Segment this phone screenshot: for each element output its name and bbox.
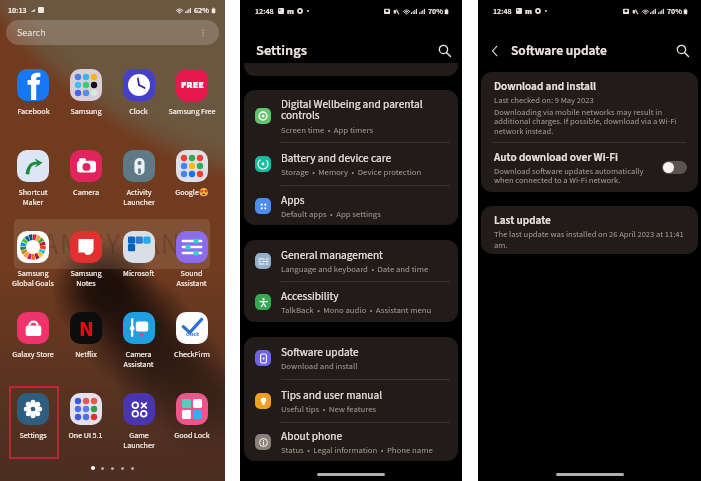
staticText: About phone	[281, 428, 343, 444]
staticText: The last update was installed on 26 Apri…	[494, 228, 687, 251]
button[interactable]: Back	[487, 43, 503, 59]
button[interactable]: Sound Assistant	[165, 223, 218, 304]
staticText: Facebook	[17, 106, 50, 117]
button[interactable]: General management	[244, 240, 458, 281]
staticText: General management	[281, 247, 383, 263]
button[interactable]: Facebook	[7, 61, 59, 142]
staticText: Samsung	[70, 106, 102, 117]
staticText: Shortcut Maker	[18, 187, 48, 208]
staticText: Software update	[511, 41, 607, 60]
staticText: Netflix	[75, 349, 97, 360]
button[interactable]: Search	[434, 40, 454, 60]
button[interactable]: Tips and user manual	[244, 380, 458, 422]
button[interactable]: Settings	[7, 385, 59, 466]
staticText: Auto download over Wi-Fi	[494, 149, 618, 165]
staticText: Default apps • App settings	[281, 208, 381, 220]
staticText: Settings	[256, 40, 307, 61]
staticText: Download and install	[494, 78, 597, 94]
staticText: 12:48	[255, 6, 274, 17]
staticText: Download software updates automatically …	[494, 165, 656, 186]
button[interactable]: One UI 5.1	[59, 385, 112, 466]
button[interactable]: Samsung Notes	[59, 223, 112, 304]
button[interactable]: Apps	[244, 186, 458, 225]
staticText: Settings	[19, 430, 47, 441]
staticText: Downloading via mobile networks may resu…	[494, 106, 687, 137]
staticText: CheckFirm	[174, 349, 210, 360]
staticText: Sound Assistant	[176, 268, 207, 289]
staticText: Game Launcher	[123, 430, 155, 451]
button[interactable]: Galaxy Store	[7, 304, 59, 385]
staticText: Activity Launcher	[123, 187, 155, 208]
button[interactable]: N	[59, 304, 112, 385]
button[interactable]: Samsung Global Goals	[7, 223, 59, 304]
button[interactable]: Clock	[112, 61, 165, 142]
staticText: Download and install	[281, 360, 358, 372]
staticText: Tips and user manual	[281, 387, 383, 403]
staticText: Storage • Memory • Device protection	[281, 166, 422, 178]
staticText: check	[186, 331, 199, 338]
button[interactable]: Battery and device care	[244, 143, 458, 185]
button[interactable]: Camera Assistant	[112, 304, 165, 385]
staticText: Galaxy Store	[12, 349, 54, 360]
button[interactable]: Search	[672, 40, 692, 60]
button[interactable]: FREE	[165, 61, 218, 142]
button[interactable]: Download and install	[481, 72, 698, 142]
other: More options	[198, 28, 208, 38]
staticText: SAMMY FANS	[25, 223, 199, 266]
button[interactable]: Search	[6, 20, 219, 45]
button[interactable]: About phone	[244, 423, 458, 461]
button[interactable]: Samsung	[59, 61, 112, 142]
staticText: Samsung Free	[168, 106, 216, 117]
button[interactable]: Google😍	[165, 142, 218, 223]
button[interactable]: Auto download over Wi-Fi	[662, 161, 687, 174]
staticText: Software update	[281, 344, 359, 360]
staticText: 70%	[667, 6, 682, 17]
staticText: Microsoft	[123, 268, 154, 279]
staticText: Clock	[129, 106, 148, 117]
button[interactable]: Good Lock	[165, 385, 218, 466]
staticText: 10:13	[8, 5, 27, 16]
button[interactable]: check	[165, 304, 218, 385]
staticText: Good Lock	[174, 430, 210, 441]
staticText: Battery and device care	[281, 150, 392, 166]
staticText: Language and keyboard • Date and time	[281, 263, 429, 275]
staticText: Camera Assistant	[123, 349, 154, 370]
staticText: Search	[17, 26, 46, 40]
button[interactable]: Last update	[481, 206, 698, 254]
staticText: Camera	[73, 187, 99, 198]
staticText: Status • Legal information • Phone name	[281, 444, 433, 456]
button[interactable]: Microsoft	[112, 223, 165, 304]
staticText: Apps	[281, 192, 305, 208]
button[interactable]: Accessibility	[244, 282, 458, 322]
staticText: Digital Wellbeing and parental controls	[281, 96, 423, 124]
staticText: One UI 5.1	[68, 430, 103, 441]
staticText: Last checked on: 9 May 2023	[494, 94, 594, 106]
staticText: m	[287, 6, 294, 17]
staticText: 70%	[428, 6, 443, 17]
button[interactable]: Shortcut Maker	[7, 142, 59, 223]
staticText: Last update	[494, 212, 551, 228]
staticText: Accessibility	[281, 288, 339, 304]
staticText: 62%	[194, 5, 209, 16]
staticText: Google😍	[175, 187, 209, 198]
staticText: 12:48	[493, 6, 512, 17]
staticText: Samsung Global Goals	[12, 268, 54, 289]
staticText: m	[525, 6, 532, 17]
staticText: TalkBack • Mono audio • Assistant menu	[281, 304, 432, 316]
button[interactable]: Software update	[244, 337, 458, 379]
staticText: N	[79, 313, 94, 344]
button[interactable]: Digital Wellbeing and parental controls	[244, 90, 458, 142]
button[interactable]: Activity Launcher	[112, 142, 165, 223]
staticText: Samsung Notes	[70, 268, 102, 289]
button[interactable]: Game Launcher	[112, 385, 165, 466]
staticText: Useful tips • New features	[281, 403, 377, 415]
staticText: FREE	[181, 78, 204, 92]
staticText: Screen time • App timers	[281, 124, 374, 136]
button[interactable]: Auto download over Wi-Fi	[481, 143, 698, 192]
button[interactable]: Camera	[59, 142, 112, 223]
